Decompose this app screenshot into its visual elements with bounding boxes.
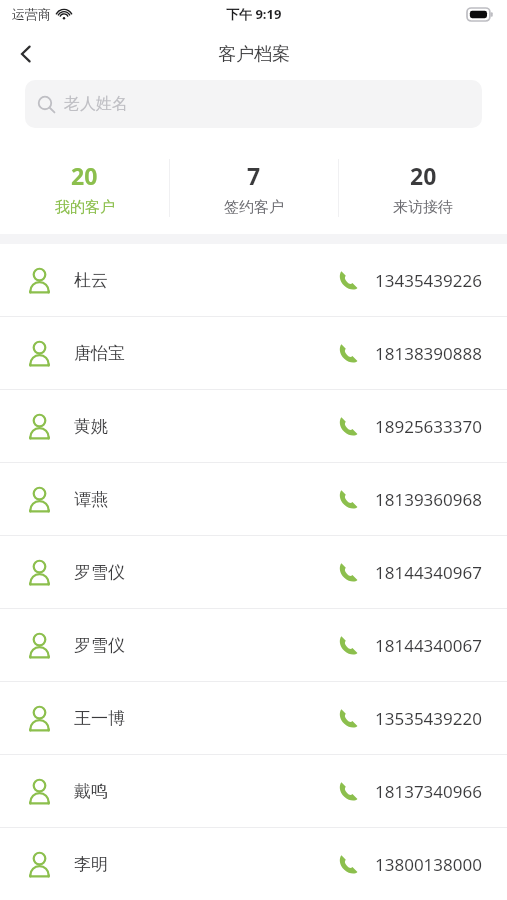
other: Call (337, 269, 359, 291)
other: Call (337, 342, 359, 364)
staticText: 唐怡宝 (74, 343, 125, 364)
staticText: 来访接待 (393, 198, 453, 217)
other: Call (337, 561, 359, 583)
staticText: 下午 9:19 (226, 5, 282, 23)
staticText: 7 (247, 160, 261, 191)
button[interactable]: Back (0, 28, 52, 80)
staticText: 13800138000 (375, 853, 482, 876)
other: Call (337, 488, 359, 510)
staticText: 客户档案 (218, 43, 290, 66)
staticText: 王一博 (74, 708, 125, 729)
button[interactable]: 罗雪仪 (0, 536, 507, 608)
staticText: 13535439220 (375, 707, 482, 730)
other: Call (337, 853, 359, 875)
staticText: 李明 (74, 854, 108, 875)
other: Call (337, 634, 359, 656)
button[interactable]: 李明 (0, 828, 507, 900)
staticText: 18144340967 (375, 561, 482, 584)
button[interactable]: 唐怡宝 (0, 317, 507, 389)
staticText: 老人姓名 (64, 94, 128, 114)
button[interactable]: 罗雪仪 (0, 609, 507, 681)
staticText: 18925633370 (375, 415, 482, 438)
staticText: 谭燕 (74, 489, 108, 510)
staticText: 18139360968 (375, 488, 482, 511)
staticText: 罗雪仪 (74, 635, 125, 656)
staticText: 我的客户 (55, 198, 115, 217)
button[interactable]: 戴鸣 (0, 755, 507, 827)
button[interactable]: 谭燕 (0, 463, 507, 535)
other: Call (337, 415, 359, 437)
button[interactable]: 7 (170, 152, 338, 224)
staticText: 13435439226 (375, 269, 482, 292)
staticText: 18137340966 (375, 780, 482, 803)
staticText: 戴鸣 (74, 781, 108, 802)
button[interactable]: 王一博 (0, 682, 507, 754)
button[interactable]: 20 (0, 152, 169, 224)
other: Call (337, 707, 359, 729)
staticText: 黄姚 (74, 416, 108, 437)
staticText: 罗雪仪 (74, 562, 125, 583)
staticText: 18138390888 (375, 342, 482, 365)
other: Call (337, 780, 359, 802)
staticText: 签约客户 (224, 198, 284, 217)
button[interactable]: 黄姚 (0, 390, 507, 462)
staticText: 18144340067 (375, 634, 482, 657)
staticText: 20 (71, 160, 98, 191)
staticText: 杜云 (74, 270, 108, 291)
staticText: 20 (410, 160, 437, 191)
staticText: 运营商 (12, 6, 51, 22)
button[interactable]: 老人姓名 (25, 80, 482, 128)
button[interactable]: 杜云 (0, 244, 507, 316)
button[interactable]: 20 (339, 152, 507, 224)
